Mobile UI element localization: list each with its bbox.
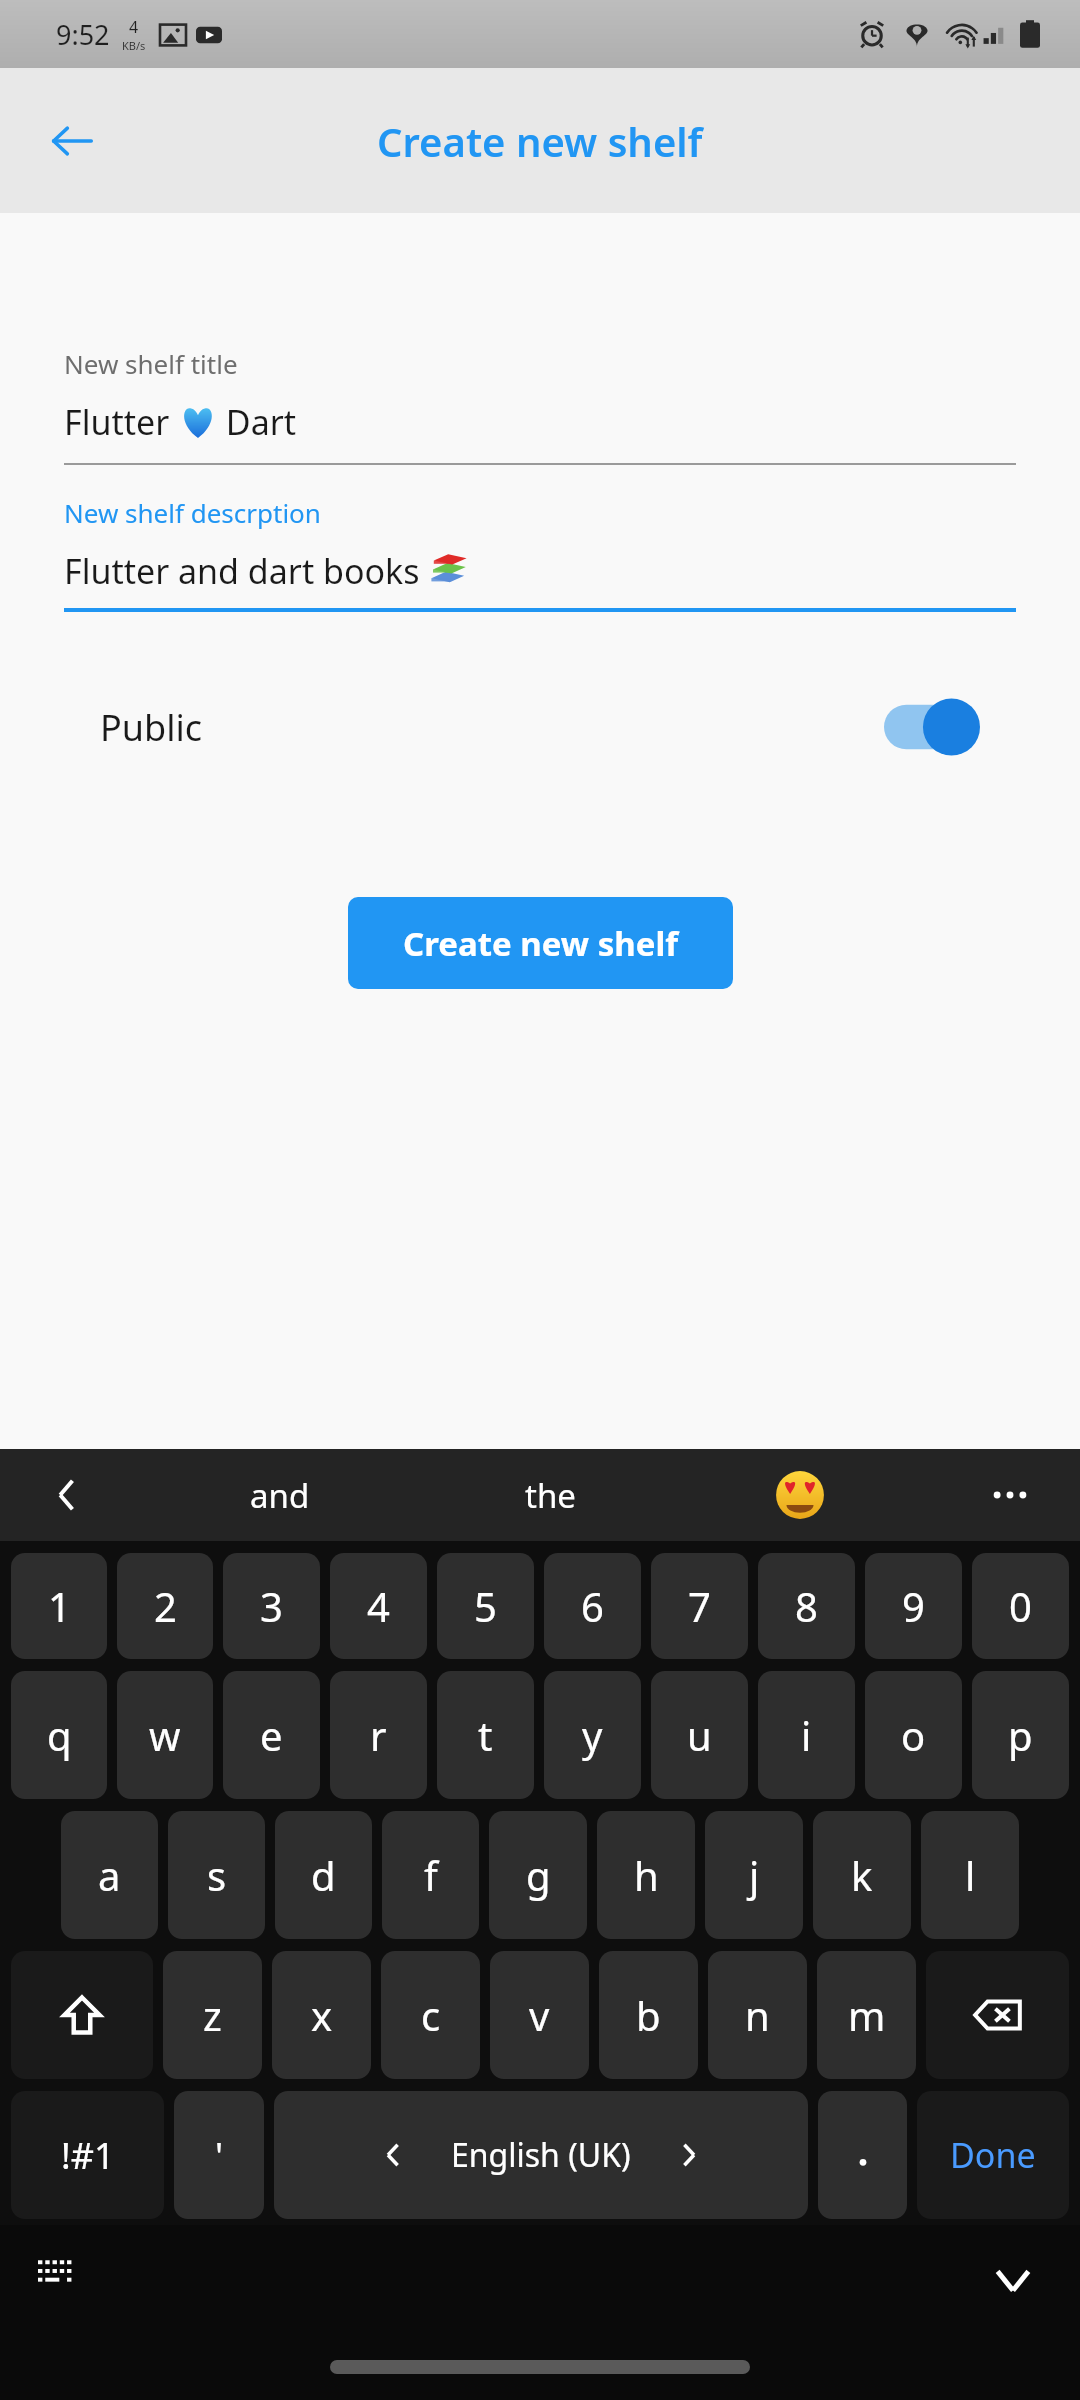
- button[interactable]: x: [272, 1951, 371, 2079]
- button[interactable]: Backspace: [926, 1951, 1069, 2079]
- button[interactable]: p: [972, 1671, 1069, 1799]
- staticText: ': [215, 2131, 224, 2180]
- staticText: 3: [260, 1579, 283, 1633]
- button[interactable]: the: [465, 1449, 635, 1541]
- button[interactable]: 5: [437, 1553, 534, 1659]
- staticText: v: [529, 1988, 550, 2042]
- button[interactable]: More options: [970, 1455, 1050, 1535]
- staticText: n: [745, 1988, 770, 2042]
- button[interactable]: w: [117, 1671, 213, 1799]
- staticText: and: [250, 1473, 310, 1518]
- button[interactable]: v: [490, 1951, 589, 2079]
- staticText: i: [801, 1708, 812, 1762]
- button[interactable]: New shelf descrption: [64, 495, 1016, 612]
- staticText: a: [98, 1848, 121, 1902]
- staticText: Create new shelf: [403, 921, 678, 966]
- button[interactable]: k: [813, 1811, 911, 1939]
- staticText: Public: [100, 703, 203, 752]
- staticText: r: [370, 1708, 387, 1762]
- staticText: e: [260, 1708, 283, 1762]
- button[interactable]: q: [11, 1671, 107, 1799]
- button[interactable]: Public: [100, 682, 980, 772]
- button[interactable]: 7: [651, 1553, 748, 1659]
- button[interactable]: e: [223, 1671, 320, 1799]
- staticText: 1: [48, 1579, 71, 1633]
- button[interactable]: u: [651, 1671, 748, 1799]
- button[interactable]: b: [599, 1951, 698, 2079]
- staticText: English (UK): [451, 2133, 631, 2177]
- staticText: Dart: [217, 399, 297, 445]
- staticText: w: [149, 1708, 181, 1762]
- staticText: s: [207, 1848, 227, 1902]
- button[interactable]: 9: [865, 1553, 962, 1659]
- staticText: z: [203, 1988, 222, 2042]
- button[interactable]: z: [163, 1951, 262, 2079]
- button[interactable]: [818, 2091, 907, 2219]
- staticText: 2: [154, 1579, 177, 1633]
- button[interactable]: 3: [223, 1553, 320, 1659]
- staticText: Create new shelf: [377, 114, 703, 168]
- staticText: 5: [474, 1579, 497, 1633]
- button[interactable]: o: [865, 1671, 962, 1799]
- button[interactable]: h: [597, 1811, 695, 1939]
- button[interactable]: t: [437, 1671, 534, 1799]
- staticText: 0: [1009, 1579, 1032, 1633]
- button[interactable]: 0: [972, 1553, 1069, 1659]
- staticText: m: [848, 1988, 886, 2042]
- staticText: q: [47, 1708, 72, 1762]
- button[interactable]: 2: [117, 1553, 213, 1659]
- button[interactable]: a: [61, 1811, 158, 1939]
- staticText: b: [636, 1988, 661, 2042]
- button[interactable]: Hide keyboard: [974, 2241, 1052, 2319]
- staticText: 9: [902, 1579, 925, 1633]
- button[interactable]: Shift: [11, 1951, 153, 2079]
- staticText: g: [526, 1848, 551, 1902]
- button[interactable]: r: [330, 1671, 427, 1799]
- button[interactable]: y: [544, 1671, 641, 1799]
- button[interactable]: Space, English (UK): [274, 2091, 808, 2219]
- staticText: 9:52: [56, 16, 110, 53]
- staticText: Done: [950, 2132, 1036, 2178]
- staticText: Flutter and dart books: [64, 548, 429, 594]
- button[interactable]: g: [489, 1811, 587, 1939]
- staticText: !#1: [61, 2131, 115, 2180]
- staticText: y: [582, 1708, 603, 1762]
- button[interactable]: Back: [36, 105, 108, 177]
- staticText: f: [424, 1848, 438, 1902]
- button[interactable]: ': [174, 2091, 264, 2219]
- staticText: KB/s: [122, 38, 146, 53]
- button[interactable]: Emoji: [760, 1455, 840, 1535]
- button[interactable]: n: [708, 1951, 807, 2079]
- staticText: 7: [688, 1579, 711, 1633]
- button[interactable]: Public toggle, on: [884, 696, 980, 758]
- button[interactable]: 8: [758, 1553, 855, 1659]
- staticText: 6: [581, 1579, 604, 1633]
- staticText: t: [478, 1708, 493, 1762]
- button[interactable]: d: [275, 1811, 372, 1939]
- button[interactable]: s: [168, 1811, 265, 1939]
- button[interactable]: 1: [11, 1553, 107, 1659]
- button[interactable]: New shelf title: [64, 346, 1016, 465]
- button[interactable]: Create new shelf: [348, 897, 733, 989]
- button[interactable]: Switch keyboard: [24, 2241, 96, 2313]
- staticText: New shelf descrption: [64, 495, 321, 530]
- button[interactable]: m: [817, 1951, 916, 2079]
- button[interactable]: Previous suggestions: [30, 1458, 104, 1532]
- staticText: c: [421, 1988, 441, 2042]
- staticText: x: [311, 1988, 333, 2042]
- staticText: 4: [367, 1579, 390, 1633]
- button[interactable]: and: [190, 1449, 370, 1541]
- button[interactable]: l: [921, 1811, 1019, 1939]
- button[interactable]: 4: [330, 1553, 427, 1659]
- button[interactable]: 6: [544, 1553, 641, 1659]
- staticText: u: [687, 1708, 712, 1762]
- button[interactable]: Done: [917, 2091, 1069, 2219]
- button[interactable]: i: [758, 1671, 855, 1799]
- staticText: l: [965, 1848, 976, 1902]
- staticText: o: [901, 1708, 926, 1762]
- staticText: Flutter: [64, 399, 179, 445]
- button[interactable]: c: [381, 1951, 480, 2079]
- button[interactable]: j: [705, 1811, 803, 1939]
- button[interactable]: f: [382, 1811, 479, 1939]
- button[interactable]: !#1: [11, 2091, 164, 2219]
